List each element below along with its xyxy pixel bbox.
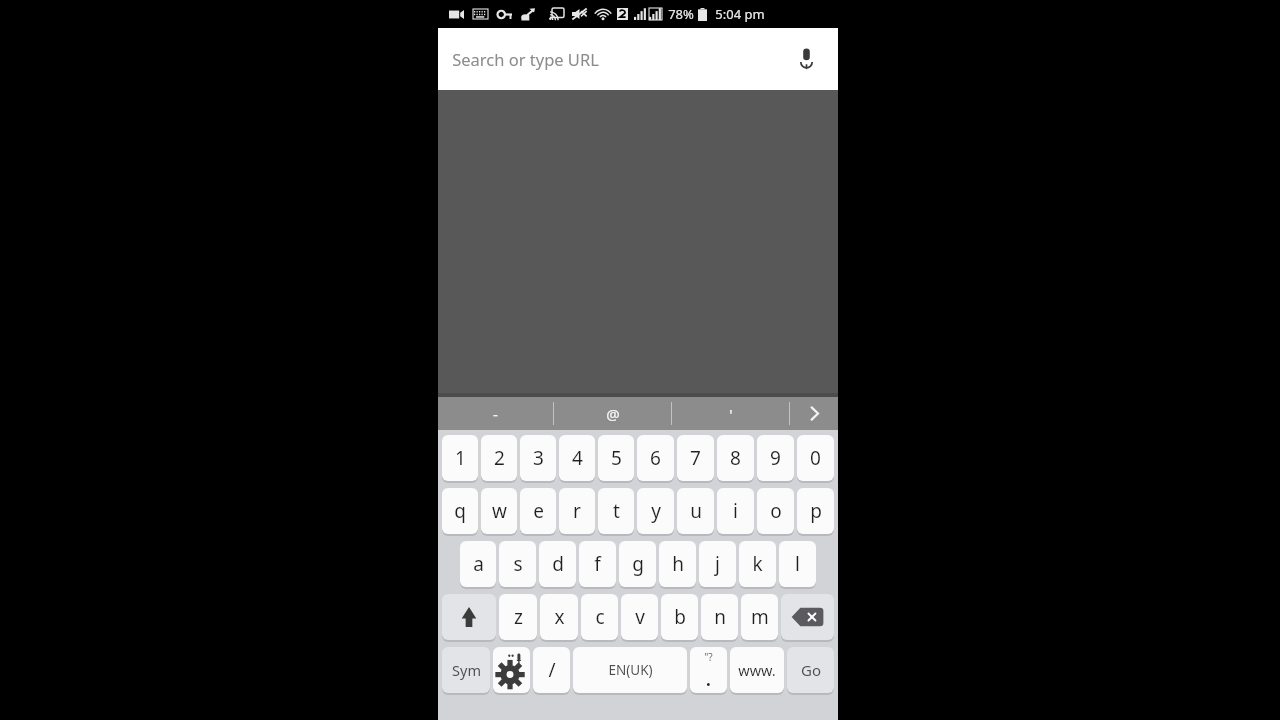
button[interactable]: Voice search bbox=[790, 43, 822, 75]
button[interactable]: ' bbox=[672, 397, 789, 430]
staticText: m bbox=[751, 604, 769, 630]
button[interactable]: j bbox=[699, 541, 736, 587]
staticText: w bbox=[492, 498, 507, 524]
staticText: y bbox=[651, 498, 661, 524]
staticText: 8 bbox=[730, 445, 741, 471]
staticText: 3 bbox=[533, 445, 544, 471]
button[interactable]: s bbox=[499, 541, 536, 587]
button[interactable]: h bbox=[659, 541, 696, 587]
staticText: g bbox=[632, 551, 644, 577]
button[interactable]: @ bbox=[554, 397, 671, 430]
staticText: r bbox=[573, 498, 581, 524]
button[interactable]: c bbox=[581, 594, 618, 640]
staticText: p bbox=[810, 498, 822, 524]
button[interactable]: l bbox=[779, 541, 816, 587]
staticText: / bbox=[548, 657, 556, 683]
button[interactable]: 4 bbox=[559, 435, 595, 481]
button[interactable]: 5 bbox=[598, 435, 634, 481]
button[interactable]: y bbox=[637, 488, 674, 534]
staticText: 0 bbox=[810, 445, 821, 471]
staticText: EN(UK) bbox=[608, 661, 653, 679]
staticText: l bbox=[795, 551, 800, 577]
button[interactable]: 1 bbox=[442, 435, 478, 481]
staticText: @ bbox=[606, 404, 620, 424]
staticText: 9 bbox=[770, 445, 781, 471]
button[interactable]: i bbox=[717, 488, 754, 534]
button[interactable]: Shift bbox=[442, 594, 496, 640]
staticText: ' bbox=[729, 404, 733, 424]
button[interactable]: z bbox=[499, 594, 537, 640]
button[interactable]: r bbox=[559, 488, 595, 534]
staticText: "? bbox=[704, 650, 713, 664]
button[interactable]: More suggestions bbox=[790, 397, 838, 430]
button[interactable]: x bbox=[540, 594, 578, 640]
staticText: 5:04 pm bbox=[715, 5, 765, 23]
staticText: 6 bbox=[650, 445, 661, 471]
button[interactable]: Sym bbox=[442, 647, 490, 693]
button[interactable]: 2 bbox=[481, 435, 517, 481]
staticText: Search or type URL bbox=[452, 48, 599, 70]
button[interactable]: e bbox=[520, 488, 556, 534]
button[interactable]: / bbox=[533, 647, 570, 693]
staticText: q bbox=[454, 498, 466, 524]
staticText: 5 bbox=[611, 445, 622, 471]
staticText: s bbox=[513, 551, 523, 577]
staticText: Sym bbox=[452, 660, 481, 680]
staticText: h bbox=[672, 551, 684, 577]
button[interactable]: 9 bbox=[757, 435, 794, 481]
staticText: . bbox=[706, 668, 711, 691]
staticText: u bbox=[690, 498, 702, 524]
button[interactable]: www. bbox=[730, 647, 784, 693]
button[interactable]: w bbox=[481, 488, 517, 534]
staticText: d bbox=[552, 551, 564, 577]
staticText: www. bbox=[738, 660, 776, 680]
button[interactable]: "? bbox=[690, 647, 727, 693]
staticText: a bbox=[473, 551, 484, 577]
staticText: f bbox=[594, 551, 601, 577]
staticText: 2 bbox=[494, 445, 505, 471]
staticText: z bbox=[514, 604, 523, 630]
button[interactable]: f bbox=[579, 541, 616, 587]
staticText: 78% bbox=[668, 5, 694, 23]
staticText: 7 bbox=[690, 445, 701, 471]
button[interactable]: 8 bbox=[717, 435, 754, 481]
button[interactable]: 3 bbox=[520, 435, 556, 481]
button[interactable]: m bbox=[741, 594, 778, 640]
button[interactable]: q bbox=[442, 488, 478, 534]
button[interactable]: EN(UK) bbox=[573, 647, 687, 693]
button[interactable]: 0 bbox=[797, 435, 834, 481]
button[interactable]: b bbox=[661, 594, 698, 640]
staticText: j bbox=[715, 551, 720, 577]
staticText: b bbox=[674, 604, 686, 630]
staticText: i bbox=[733, 498, 738, 524]
button[interactable]: - bbox=[438, 397, 553, 430]
staticText: t bbox=[613, 498, 620, 524]
staticText: k bbox=[752, 551, 763, 577]
button[interactable]: t bbox=[598, 488, 634, 534]
staticText: 1 bbox=[455, 445, 466, 471]
button[interactable]: Go bbox=[787, 647, 834, 693]
button[interactable]: g bbox=[619, 541, 656, 587]
staticText: n bbox=[714, 604, 726, 630]
staticText: - bbox=[493, 404, 498, 424]
button[interactable]: o bbox=[757, 488, 794, 534]
button[interactable]: v bbox=[621, 594, 658, 640]
staticText: c bbox=[595, 604, 605, 630]
staticText: e bbox=[533, 498, 544, 524]
button[interactable]: Search or type URL bbox=[438, 28, 838, 90]
button[interactable]: 7 bbox=[677, 435, 714, 481]
button[interactable]: k bbox=[739, 541, 776, 587]
staticText: x bbox=[554, 604, 565, 630]
staticText: v bbox=[635, 604, 645, 630]
button[interactable]: n bbox=[701, 594, 738, 640]
button[interactable]: Settings and voice input bbox=[493, 647, 530, 693]
button[interactable]: Backspace bbox=[781, 594, 834, 640]
button[interactable]: p bbox=[797, 488, 834, 534]
staticText: 4 bbox=[572, 445, 583, 471]
button[interactable]: u bbox=[677, 488, 714, 534]
staticText: o bbox=[770, 498, 782, 524]
button[interactable]: a bbox=[460, 541, 496, 587]
staticText: Go bbox=[801, 660, 821, 680]
button[interactable]: 6 bbox=[637, 435, 674, 481]
button[interactable]: d bbox=[539, 541, 576, 587]
